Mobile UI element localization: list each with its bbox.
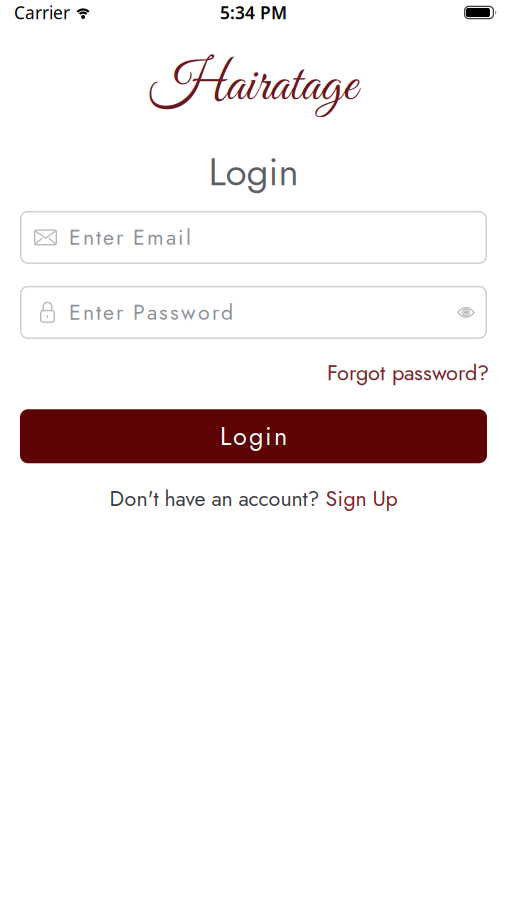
staticText: L o g i n [220,418,287,455]
button[interactable]: L o g i n [20,409,487,463]
button[interactable]: E n t e r P a s s w o r d [20,286,487,339]
button[interactable]: Forgot password? [327,357,489,388]
staticText: 5:34 PM [220,1,287,24]
button[interactable]: Sign Up [325,483,397,514]
staticText: E n t e r P a s s w o r d [69,297,233,328]
staticText: Carrier [14,1,70,24]
button[interactable]: Show password [457,306,487,318]
staticText: Hairatage [150,53,357,121]
staticText: Forgot password? [327,357,489,388]
staticText: Sign Up [325,483,397,514]
staticText: Login [208,144,298,200]
staticText: Don't have an account? [109,483,319,514]
staticText: E n t e r E m a i l [69,222,191,253]
button[interactable]: E n t e r E m a i l [20,211,487,264]
